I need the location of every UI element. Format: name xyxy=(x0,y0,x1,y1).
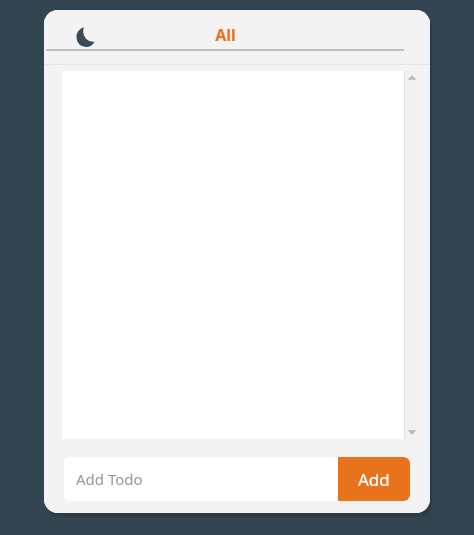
button[interactable]: Add xyxy=(338,457,410,501)
button[interactable]: Add Todo xyxy=(64,457,338,501)
staticText: Add Todo xyxy=(76,469,143,489)
staticText: Add xyxy=(358,468,390,491)
button[interactable]: Toggle dark mode xyxy=(66,17,106,57)
button[interactable]: All xyxy=(44,20,406,55)
staticText: All xyxy=(215,24,236,46)
